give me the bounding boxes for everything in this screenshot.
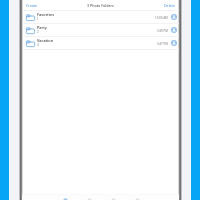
button[interactable]: Shared folder info — [171, 14, 177, 20]
staticText: 3:30 PM — [157, 29, 168, 33]
staticText: 1 — [37, 17, 39, 21]
button[interactable]: Create — [22, 1, 40, 10]
staticText: Favorites — [37, 12, 55, 17]
staticText: 2 — [37, 30, 39, 34]
button[interactable]: Favorites — [22, 11, 179, 23]
button[interactable]: Albums — [101, 195, 125, 200]
staticText: Create — [26, 3, 38, 8]
button[interactable]: Shared — [77, 195, 101, 200]
button[interactable]: Delete — [162, 1, 179, 10]
button[interactable]: Party — [22, 24, 179, 36]
staticText: Vacation — [37, 38, 54, 43]
button[interactable]: Photos — [53, 195, 77, 200]
button[interactable]: Vacation — [22, 37, 179, 49]
staticText: 12:00 AM — [155, 16, 168, 20]
staticText: Delete — [164, 3, 175, 8]
staticText: 3 — [37, 43, 39, 47]
staticText: 3 Photo Folders — [87, 3, 114, 8]
button[interactable]: Shared folder info — [171, 27, 177, 33]
button[interactable]: Shared folder info — [171, 40, 177, 46]
staticText: Party — [37, 25, 47, 30]
staticText: 3:47 PM — [157, 42, 168, 46]
button[interactable]: Search — [125, 195, 149, 200]
